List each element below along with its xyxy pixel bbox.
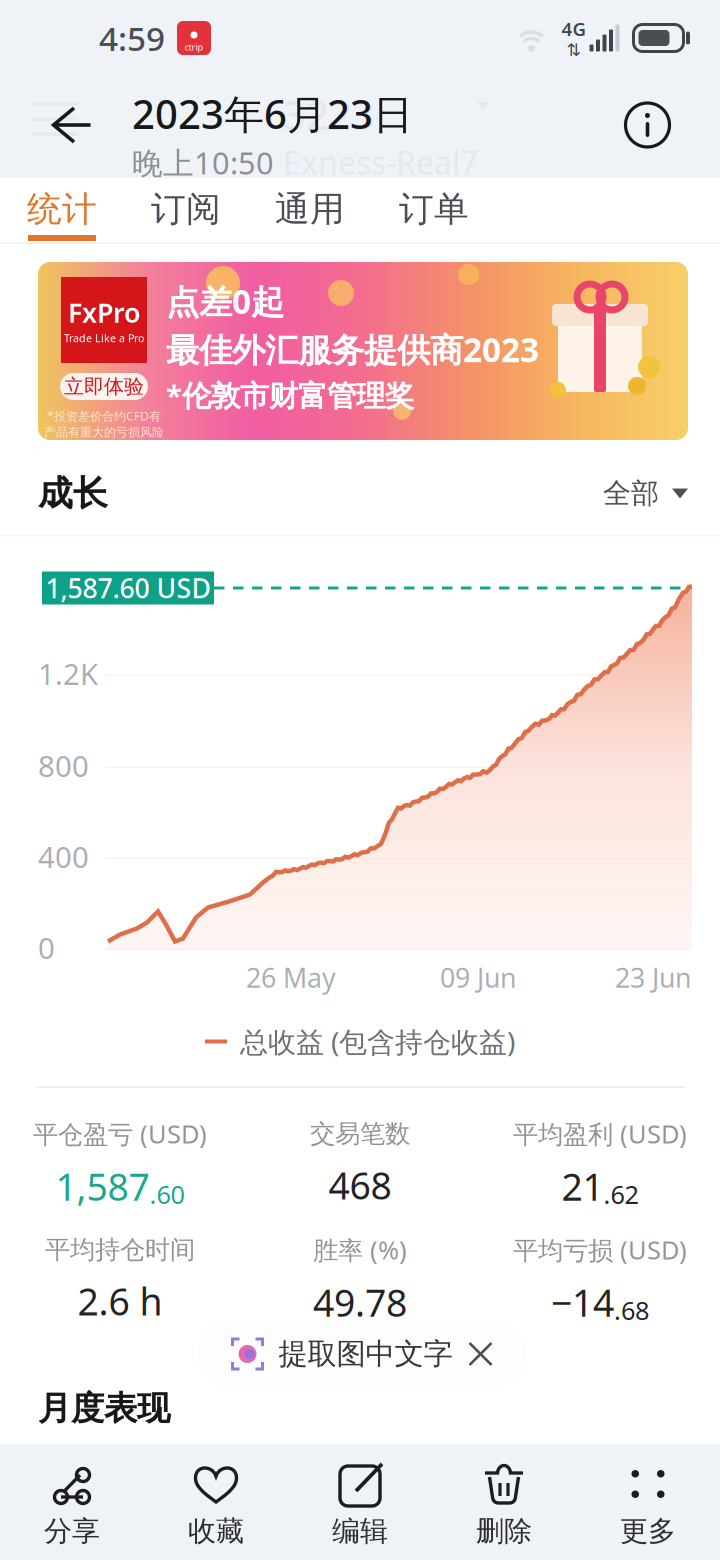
staticText: 产品有重大的亏损风险 bbox=[44, 425, 164, 440]
staticText: 月度表现 bbox=[38, 1388, 170, 1429]
staticText: 订阅 bbox=[151, 188, 221, 231]
staticText: 1.2K bbox=[38, 654, 98, 693]
staticText: 1,587.60 USD bbox=[45, 570, 210, 606]
staticText: 2.6 h bbox=[77, 1276, 162, 1326]
staticText: 通用 bbox=[275, 188, 345, 231]
staticText: 49.78 bbox=[313, 1277, 407, 1327]
staticText: 平均持仓时间 bbox=[45, 1234, 195, 1265]
staticText: *投资差价合约CFD有 bbox=[47, 408, 161, 424]
button[interactable]: 更多 bbox=[576, 1444, 720, 1560]
staticText: 3223 bbox=[283, 88, 375, 141]
staticText: .60 bbox=[149, 1177, 184, 1211]
staticText: 晚上10:50 bbox=[132, 142, 274, 183]
staticText: *伦敦市财富管理奖 bbox=[166, 375, 414, 414]
button[interactable]: 订阅 bbox=[124, 178, 248, 244]
staticText: ctrip bbox=[184, 41, 203, 53]
staticText: .68 bbox=[614, 1293, 649, 1327]
staticText: 800 bbox=[38, 746, 89, 785]
staticText: 删除 bbox=[476, 1514, 532, 1548]
staticText: Exness-Real7 bbox=[283, 141, 478, 184]
staticText: 09 Jun bbox=[440, 960, 516, 995]
button[interactable]: Info bbox=[603, 81, 691, 169]
button[interactable]: Back bbox=[28, 81, 116, 169]
button[interactable]: 收藏 bbox=[144, 1444, 288, 1560]
staticText: −14 bbox=[551, 1277, 614, 1327]
staticText: 最佳外汇服务提供商2023 bbox=[166, 327, 539, 372]
button[interactable]: 订单 bbox=[372, 178, 496, 244]
staticText: ⇅ bbox=[566, 40, 581, 60]
staticText: 点差0起 bbox=[166, 279, 284, 323]
staticText: 更多 bbox=[620, 1514, 676, 1548]
staticText: 分享 bbox=[44, 1514, 100, 1548]
button[interactable]: 编辑 bbox=[288, 1444, 432, 1560]
staticText: 400 bbox=[38, 837, 89, 876]
staticText: 0 bbox=[38, 928, 55, 967]
staticText: 4G bbox=[561, 16, 586, 41]
button[interactable]: 提取图中文字 bbox=[197, 1321, 527, 1387]
staticText: 总收益 (包含持仓收益) bbox=[240, 1023, 515, 1060]
staticText: 468 bbox=[328, 1160, 391, 1210]
button[interactable]: 通用 bbox=[248, 178, 372, 244]
staticText: .62 bbox=[603, 1177, 638, 1211]
staticText: 立即体验 bbox=[64, 374, 144, 399]
staticText: 1,587 bbox=[55, 1161, 149, 1211]
staticText: 订单 bbox=[399, 188, 469, 231]
button[interactable]: 统计 bbox=[0, 178, 124, 244]
staticText: 4:59 bbox=[99, 16, 165, 60]
staticText: 成长 bbox=[38, 472, 108, 515]
button[interactable]: 删除 bbox=[432, 1444, 576, 1560]
staticText: 统计 bbox=[27, 188, 97, 231]
button[interactable]: FxPro bbox=[0, 244, 720, 452]
staticText: 提取图中文字 bbox=[278, 1336, 452, 1372]
staticText: 平均盈利 (USD) bbox=[513, 1117, 687, 1150]
staticText: 交易笔数 bbox=[310, 1118, 410, 1149]
staticText: 23 Jun bbox=[615, 960, 691, 995]
staticText: 2023年6月23日 bbox=[132, 87, 413, 140]
button[interactable]: 全部 bbox=[603, 476, 688, 511]
staticText: 26 May bbox=[246, 960, 336, 995]
staticText: 平仓盈亏 (USD) bbox=[33, 1117, 207, 1150]
staticText: 收藏 bbox=[188, 1514, 244, 1548]
staticText: 编辑 bbox=[332, 1514, 388, 1548]
staticText: 胜率 (%) bbox=[313, 1233, 407, 1266]
staticText: Trade Like a Pro bbox=[64, 331, 144, 345]
button[interactable]: 分享 bbox=[0, 1444, 144, 1560]
staticText: FxPro bbox=[68, 295, 140, 330]
staticText: 全部 bbox=[603, 476, 659, 511]
staticText: 平均亏损 (USD) bbox=[513, 1233, 687, 1266]
staticText: 21 bbox=[561, 1161, 603, 1211]
